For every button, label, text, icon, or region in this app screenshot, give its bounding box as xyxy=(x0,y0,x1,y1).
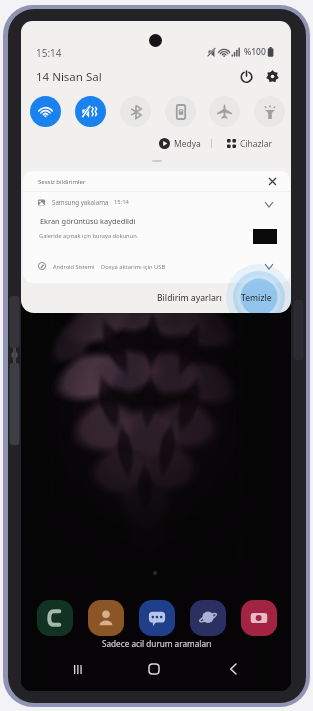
staticText: Sessiz bildirimler xyxy=(38,178,86,186)
staticText: Ekran görüntüsü kaydedildi xyxy=(40,216,136,226)
staticText: Dosya aktarımı için USB xyxy=(101,263,166,271)
staticText: Android Sistemi xyxy=(53,263,95,271)
button[interactable]: Bluetooth xyxy=(120,96,151,127)
button[interactable]: Samsung yakalama xyxy=(23,192,290,253)
staticText: %100 xyxy=(244,46,266,58)
button[interactable]: Contacts xyxy=(88,600,124,636)
staticText: 15:14 xyxy=(36,46,62,60)
button[interactable]: Auto rotate xyxy=(165,96,196,127)
button[interactable]: Expand system xyxy=(260,257,278,275)
button[interactable]: Phone xyxy=(37,600,73,636)
staticText: Cihazlar xyxy=(240,138,273,150)
staticText: Bildirim ayarları xyxy=(157,292,222,304)
button[interactable]: Dismiss xyxy=(263,172,281,190)
button[interactable]: Internet xyxy=(190,600,226,636)
button[interactable]: Expand xyxy=(260,195,278,213)
button[interactable]: Home xyxy=(142,657,166,681)
button[interactable]: Sound xyxy=(75,96,106,127)
button[interactable]: Temizle xyxy=(233,289,279,307)
staticText: Samsung yakalama xyxy=(52,198,109,206)
staticText: Medya xyxy=(174,138,201,150)
staticText: Sadece acil durum aramaları xyxy=(102,638,212,649)
button[interactable]: Medya xyxy=(159,136,201,151)
button[interactable]: Messages xyxy=(139,600,175,636)
button[interactable]: Wi-Fi xyxy=(30,96,61,127)
button[interactable]: Recents xyxy=(66,657,90,681)
staticText: 15:14 xyxy=(114,198,129,206)
button[interactable]: Bildirim ayarları xyxy=(151,289,227,307)
button[interactable]: Cihazlar xyxy=(227,136,273,151)
button[interactable]: Camera xyxy=(241,600,277,636)
staticText: Galeride açmak için buraya dokunun. xyxy=(39,232,139,240)
button[interactable]: Back xyxy=(221,657,245,681)
button[interactable]: Sessiz bildirimler xyxy=(23,171,290,191)
button[interactable]: Settings xyxy=(261,65,283,87)
button[interactable]: Airplane mode xyxy=(209,96,240,127)
button[interactable]: Power xyxy=(235,65,257,87)
staticText: 14 Nisan Sal xyxy=(36,69,102,85)
button[interactable]: Flashlight xyxy=(254,96,285,127)
staticText: Temizle xyxy=(241,292,272,304)
